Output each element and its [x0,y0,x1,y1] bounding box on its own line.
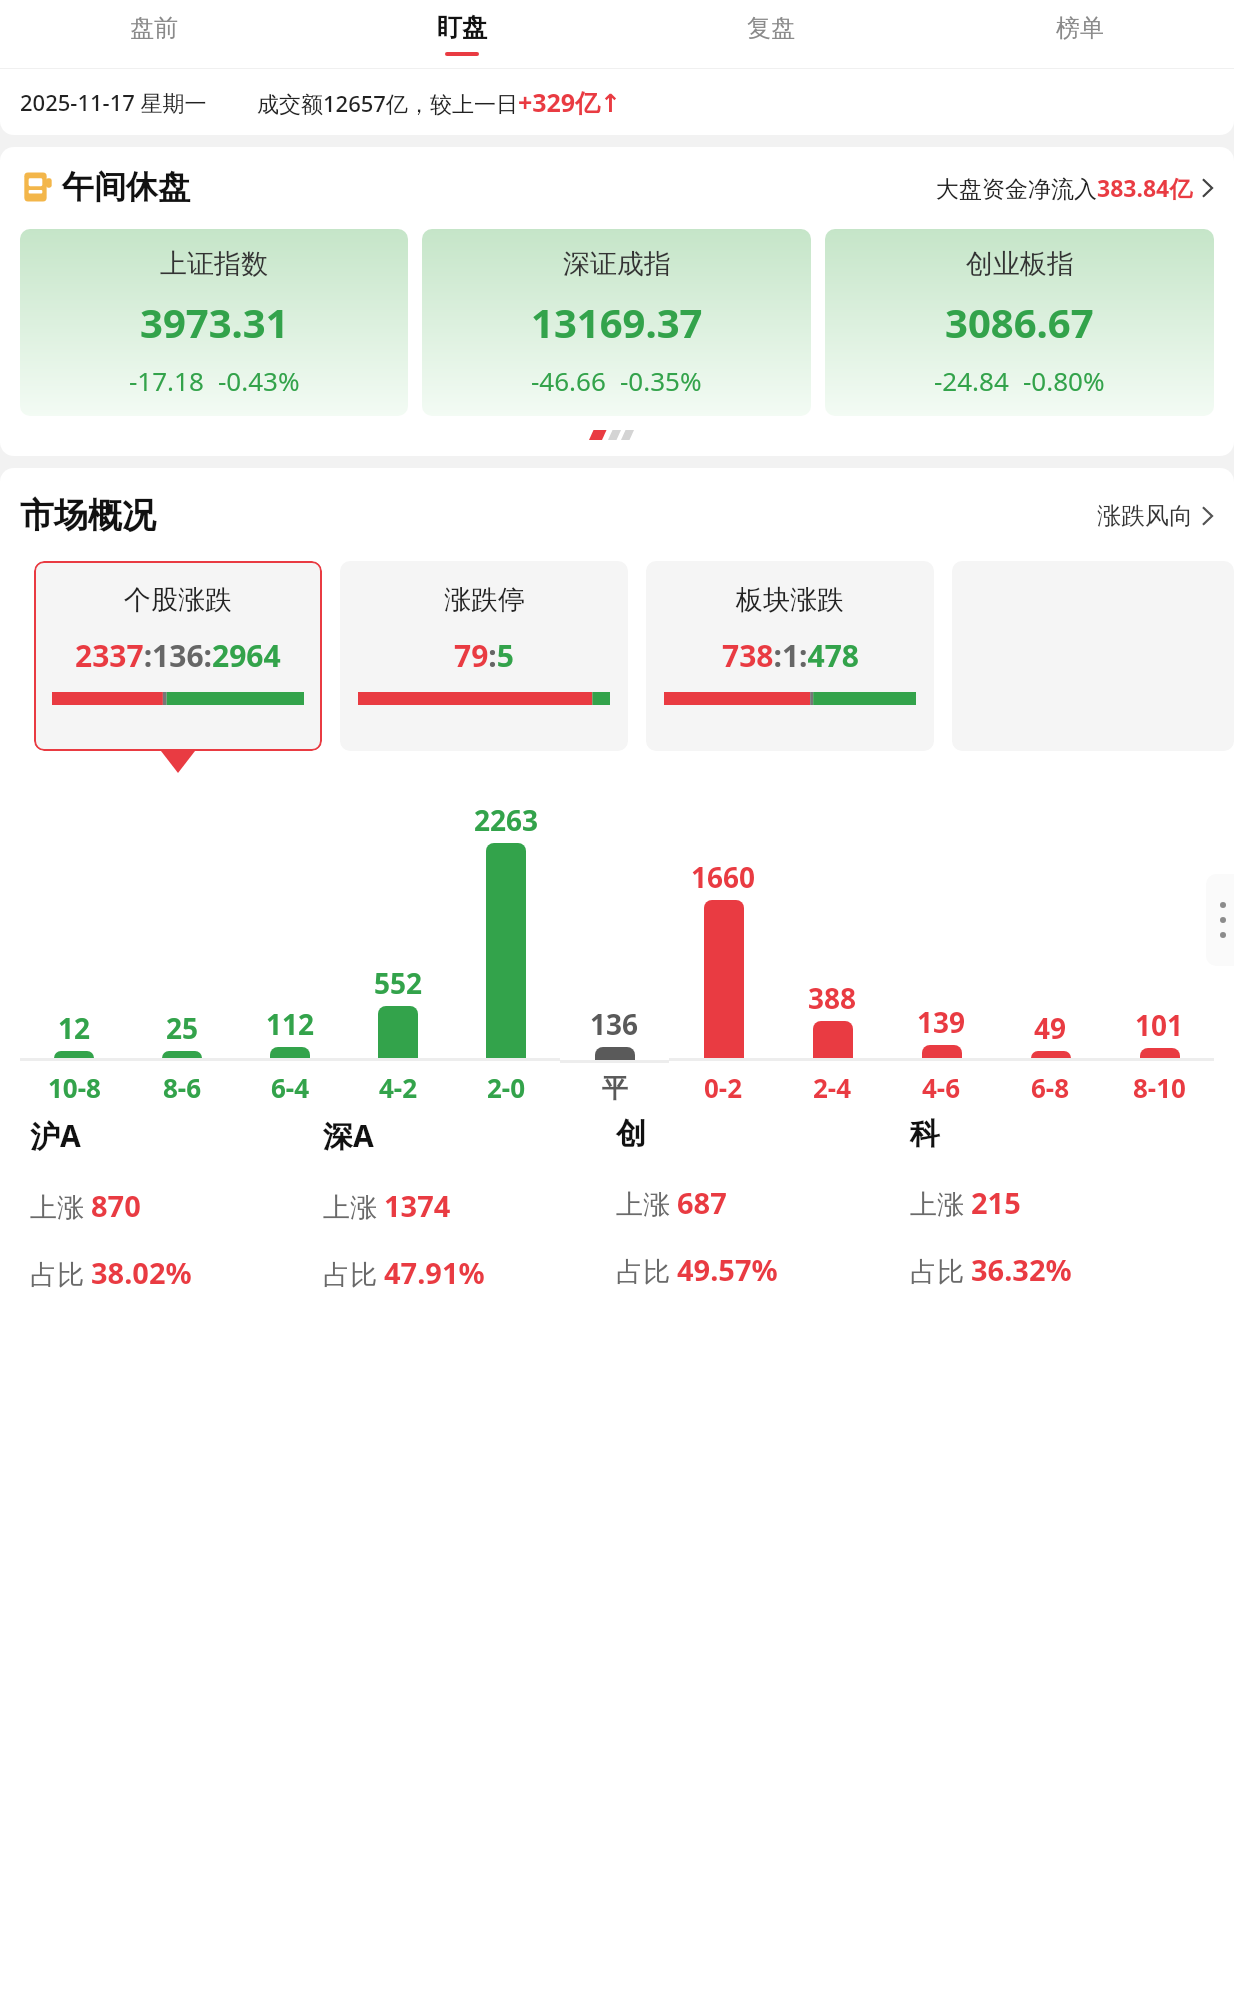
staticText: 上涨 870 [30,1186,141,1225]
button[interactable]: 科 [910,1115,1204,1289]
button[interactable]: 涨跌停 [340,561,628,751]
button[interactable]: 盘前 [0,0,308,68]
staticText: 388 [808,979,857,1017]
staticText: 8-10 [1133,1070,1186,1105]
staticText: 12 [58,1009,91,1047]
staticText: 占比 49.57% [616,1250,778,1289]
button[interactable]: 榜单 [925,0,1234,68]
staticText: 午间休盘 [62,167,190,207]
staticText: 101 [1135,1006,1184,1044]
staticText: -24.84 [934,363,1009,398]
staticText: 深A [323,1115,374,1156]
staticText: 涨跌停 [444,583,525,617]
staticText: 榜单 [1056,13,1104,43]
staticText: 1660 [691,858,756,896]
button[interactable]: 复盘 [616,0,925,68]
staticText: 2025-11-17 星期一 [20,87,207,117]
staticText: -0.35% [620,363,702,398]
staticText: 深证成指 [563,247,671,281]
staticText: 沪A [30,1115,81,1156]
staticText: 79:5 [454,635,514,676]
staticText: 复盘 [747,13,795,43]
button[interactable]: 深A [323,1115,616,1292]
staticText: 112 [266,1005,315,1043]
staticText: -46.66 [531,363,606,398]
staticText: 2337:136:2964 [75,635,281,676]
staticText: -0.43% [218,363,300,398]
staticText: 个股涨跌 [124,583,232,617]
staticText: 8-6 [163,1070,202,1105]
staticText: 738:1:478 [722,635,859,676]
button[interactable]: 大盘资金净流入383.84亿 [936,172,1214,203]
staticText: 4-6 [922,1070,961,1105]
staticText: 552 [374,964,423,1002]
staticText: 上涨 1374 [323,1186,451,1225]
staticText: 139 [917,1003,966,1041]
staticText: 2-0 [487,1070,526,1105]
staticText: 4-2 [379,1070,418,1105]
button[interactable]: 板块涨跌 [646,561,934,751]
staticText: 2263 [474,801,539,839]
staticText: 大盘资金净流入383.84亿 [936,172,1193,203]
button[interactable]: 上证指数 [20,229,408,416]
staticText: 平 [602,1072,628,1105]
staticText: 上涨 215 [910,1183,1021,1222]
staticText: 136 [590,1005,639,1043]
staticText: 3973.31 [140,295,289,349]
staticText: 创 [616,1115,646,1153]
staticText: -0.80% [1023,363,1105,398]
staticText: 科 [910,1115,940,1153]
staticText: 占比 47.91% [323,1253,485,1292]
button[interactable]: 沪A [30,1115,323,1292]
button[interactable]: 创 [616,1115,910,1289]
button[interactable]: 个股涨跌 [34,561,322,751]
button[interactable]: 涨跌风向 [1097,501,1214,531]
staticText: 成交额12657亿，较上一日+329亿↑ [257,85,622,119]
staticText: 创业板指 [966,247,1074,281]
staticText: 6-4 [271,1070,310,1105]
staticText: 涨跌风向 [1097,501,1193,531]
staticText: 上涨 687 [616,1183,727,1222]
staticText: 盯盘 [437,12,487,43]
staticText: 盘前 [130,13,178,43]
staticText: 10-8 [48,1070,101,1105]
button[interactable]: 创业板指 [825,229,1214,416]
staticText: 占比 36.32% [910,1250,1072,1289]
staticText: 上证指数 [160,247,268,281]
staticText: 0-2 [704,1070,743,1105]
staticText: 2-4 [813,1070,852,1105]
staticText: -17.18 [129,363,204,398]
staticText: 3086.67 [945,295,1094,349]
staticText: 占比 38.02% [30,1253,192,1292]
staticText: 6-8 [1031,1070,1070,1105]
button[interactable]: 深证成指 [422,229,811,416]
button[interactable]: More options [1206,874,1234,966]
button[interactable]: 盯盘 [308,0,616,68]
staticText: 13169.37 [531,295,703,349]
staticText: 市场概况 [20,494,156,537]
staticText: 板块涨跌 [736,583,844,617]
staticText: 49 [1034,1009,1067,1047]
staticText: 25 [166,1009,199,1047]
